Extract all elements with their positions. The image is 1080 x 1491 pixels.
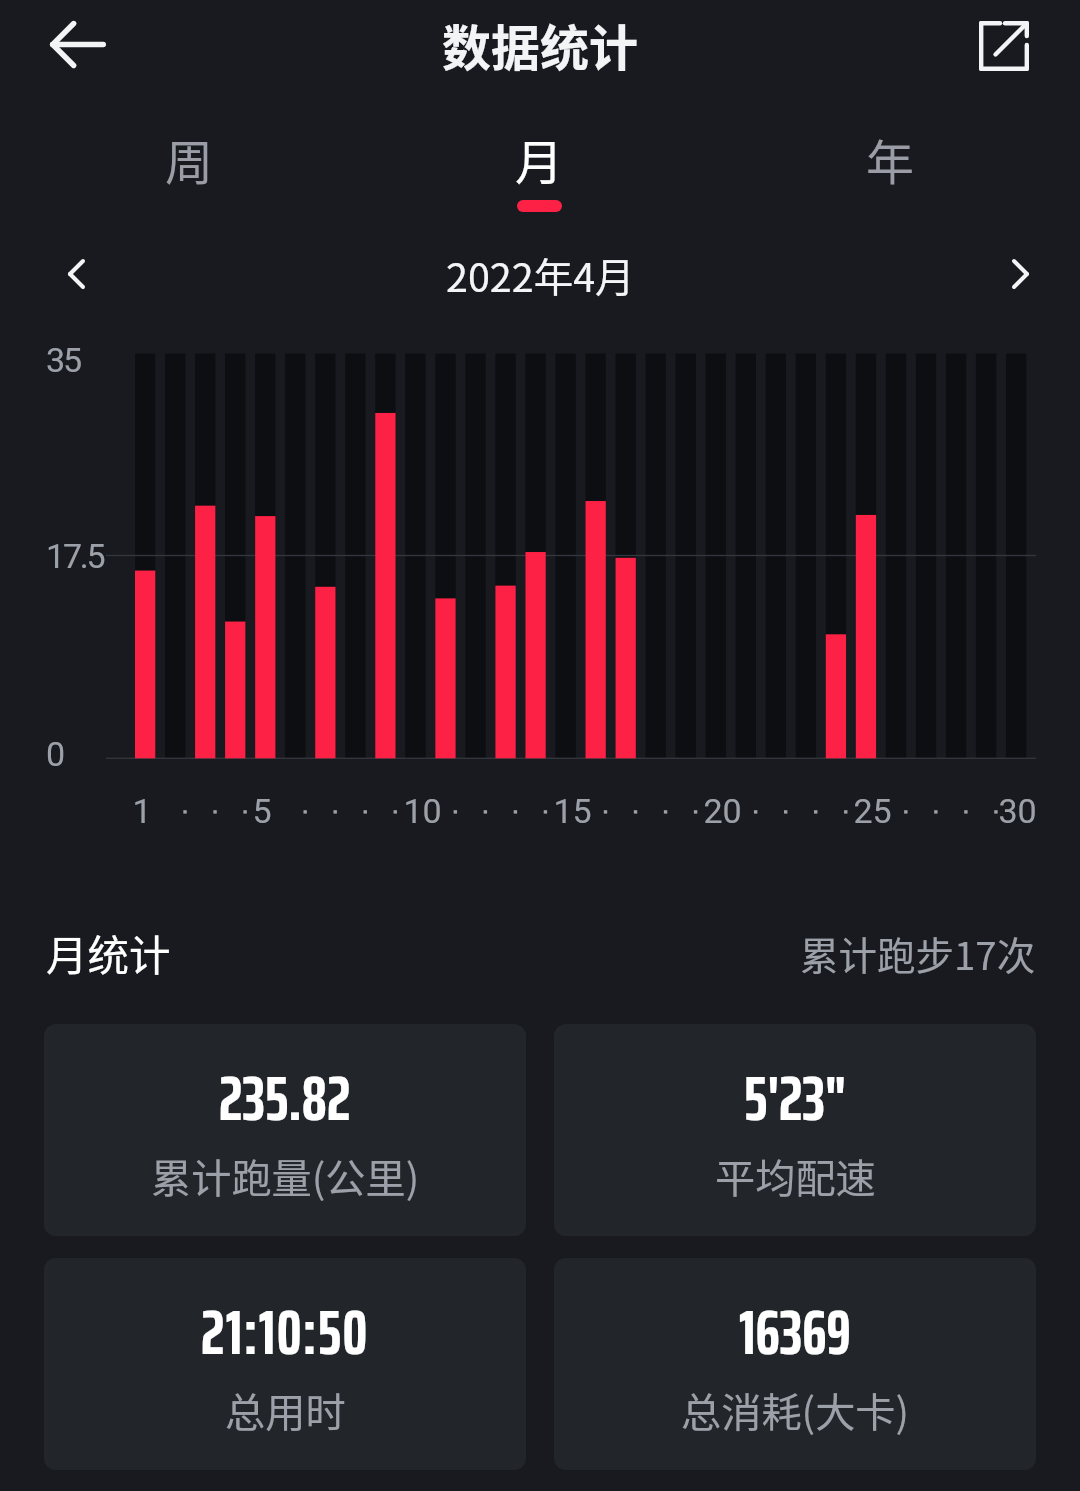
- button[interactable]: Next month: [992, 246, 1048, 302]
- staticText: 21:10:50: [201, 1284, 369, 1382]
- staticText: 累计跑步17次: [800, 925, 1036, 981]
- staticText: 月: [515, 124, 564, 194]
- button[interactable]: 年: [715, 104, 1066, 228]
- staticText: 2022年4月: [446, 246, 635, 303]
- staticText: 1: [132, 791, 152, 831]
- staticText: 10: [403, 791, 442, 831]
- staticText: 30: [998, 791, 1037, 831]
- staticText: 17.5: [46, 536, 104, 576]
- button[interactable]: Previous month: [48, 246, 104, 302]
- staticText: 235.82: [219, 1050, 351, 1148]
- staticText: 25: [853, 791, 892, 831]
- button[interactable]: 235.82: [44, 1024, 526, 1236]
- staticText: 平均配速: [715, 1146, 876, 1204]
- button[interactable]: 5'23": [554, 1024, 1036, 1236]
- staticText: 累计跑量(公里): [151, 1146, 420, 1204]
- staticText: 周: [165, 124, 214, 194]
- staticText: 数据统计: [442, 9, 639, 80]
- staticText: 总用时: [225, 1380, 346, 1438]
- staticText: 16369: [739, 1284, 851, 1382]
- staticText: 5: [252, 791, 272, 831]
- staticText: 0: [46, 734, 63, 774]
- staticText: 35: [46, 340, 80, 380]
- button[interactable]: 21:10:50: [44, 1258, 526, 1470]
- button[interactable]: 周: [14, 104, 364, 228]
- staticText: 20: [703, 791, 742, 831]
- button[interactable]: 月: [364, 104, 715, 228]
- staticText: 总消耗(大卡): [681, 1380, 910, 1438]
- staticText: 月统计: [46, 923, 171, 983]
- button[interactable]: Share: [968, 10, 1040, 82]
- button[interactable]: 16369: [554, 1258, 1036, 1470]
- button[interactable]: Back: [44, 10, 112, 78]
- staticText: 年: [866, 124, 915, 194]
- staticText: 15: [553, 791, 592, 831]
- staticText: 5'23": [744, 1050, 846, 1148]
